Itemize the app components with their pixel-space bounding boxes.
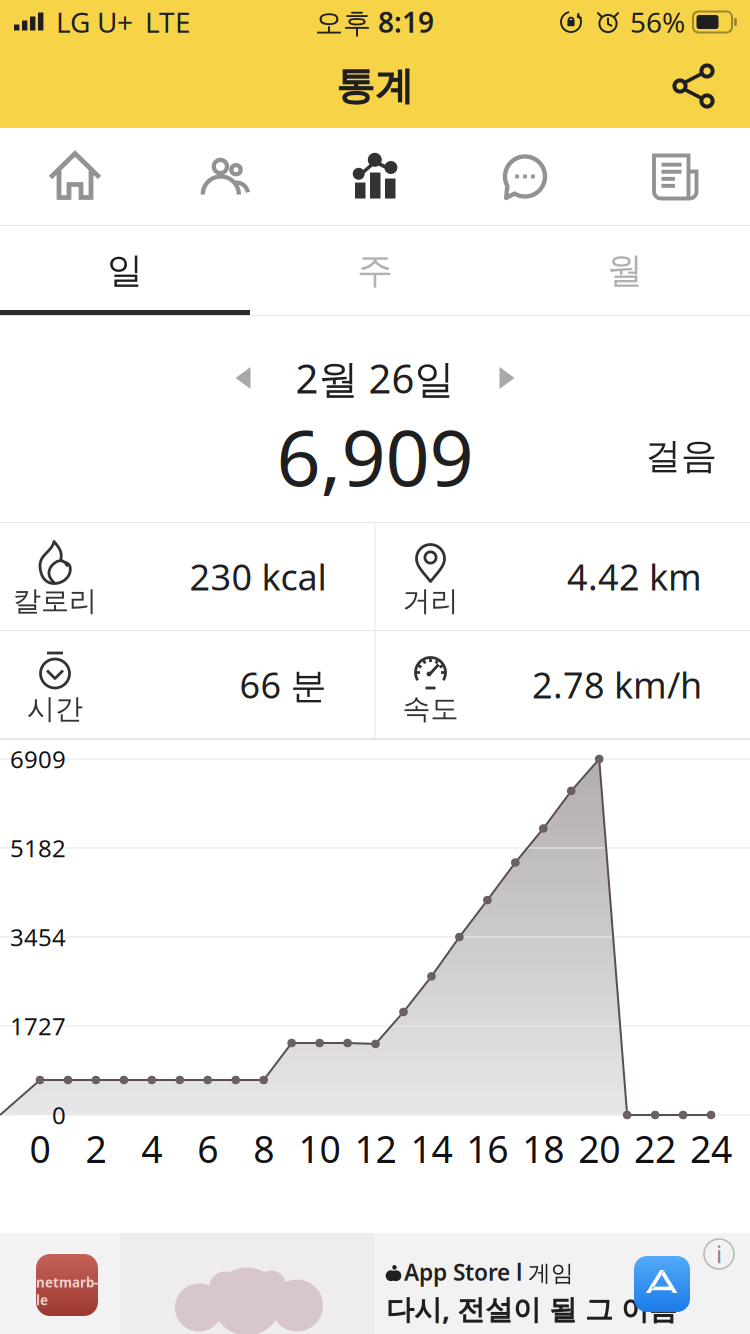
staticText: 속도	[402, 692, 458, 726]
staticText: 다시, 전설이 될 그 이름	[386, 1290, 677, 1327]
button[interactable]: 뉴스	[600, 128, 750, 225]
button[interactable]: 속도	[375, 631, 750, 738]
button[interactable]: 일	[0, 226, 250, 315]
staticText: 4	[141, 1124, 162, 1173]
staticText: 거리	[402, 584, 458, 618]
staticText: 통계	[336, 62, 414, 110]
staticText: 16	[466, 1124, 508, 1173]
button[interactable]: 통계	[300, 128, 450, 225]
button[interactable]: netmarble	[0, 1233, 750, 1334]
staticText: 칼로리	[13, 584, 97, 618]
button[interactable]: 이전 날짜	[221, 356, 265, 400]
staticText: 0	[29, 1124, 50, 1173]
staticText: 8	[253, 1124, 274, 1173]
button[interactable]: 칼로리	[0, 523, 374, 630]
staticText: 3454	[10, 921, 66, 953]
staticText: 4.42 km	[567, 553, 702, 600]
button[interactable]: 거리	[375, 523, 750, 630]
staticText: i	[716, 1238, 722, 1270]
staticText: 2	[85, 1124, 106, 1173]
staticText: 66 분	[239, 661, 326, 708]
staticText: 22	[634, 1124, 676, 1173]
staticText: 2월 26일	[295, 351, 454, 404]
button[interactable]: 다음 날짜	[484, 356, 528, 400]
staticText: 6	[197, 1124, 218, 1173]
staticText: 12	[354, 1124, 396, 1173]
staticText: netmarble	[36, 1274, 98, 1309]
staticText: 5182	[10, 832, 66, 864]
staticText: 230 kcal	[189, 553, 326, 600]
staticText: 일	[107, 248, 143, 293]
staticText: 24	[690, 1124, 732, 1173]
staticText: 오후 8:19	[315, 3, 434, 41]
staticText: 6909	[10, 743, 66, 775]
staticText: 18	[522, 1124, 564, 1173]
staticText: 1727	[10, 1010, 66, 1042]
staticText: 10	[299, 1124, 341, 1173]
staticText: 56%	[630, 3, 685, 41]
staticText: 월	[607, 248, 643, 293]
staticText: LTE	[145, 3, 191, 41]
staticText: 걸음	[645, 434, 717, 478]
staticText: 시간	[27, 692, 83, 726]
button[interactable]: 친구	[150, 128, 300, 225]
staticText: 14	[410, 1124, 452, 1173]
button[interactable]: 홈	[0, 128, 150, 225]
button[interactable]: 공유	[658, 49, 732, 123]
staticText: App Store l 게임	[404, 1257, 574, 1287]
button[interactable]: 주	[250, 226, 500, 315]
button[interactable]: 월	[500, 226, 750, 315]
staticText: LG U+	[56, 3, 133, 41]
staticText: 2.78 km/h	[532, 661, 702, 708]
staticText: 6,909	[276, 405, 473, 507]
staticText: 주	[357, 248, 393, 293]
button[interactable]: 시간	[0, 631, 374, 738]
button[interactable]: 채팅	[450, 128, 600, 225]
staticText: 20	[578, 1124, 620, 1173]
staticText: 0	[52, 1099, 66, 1131]
